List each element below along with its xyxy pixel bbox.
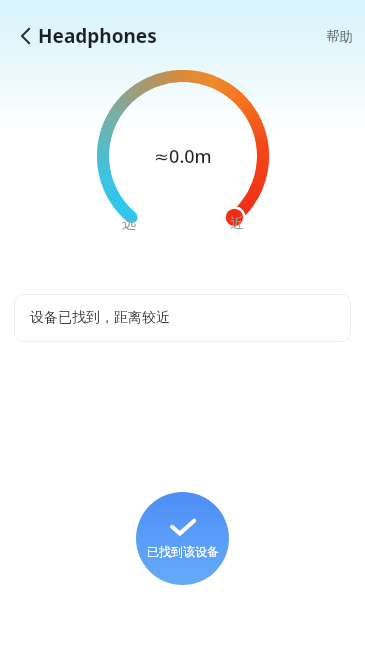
staticText: Headphones	[38, 23, 157, 49]
staticText: 已找到该设备	[147, 544, 219, 559]
button[interactable]: 已找到该设备	[136, 492, 229, 585]
staticText: ≈0.0m	[154, 144, 212, 169]
button[interactable]: 设备已找到，距离较近	[14, 294, 351, 342]
staticText: 远	[122, 215, 183, 233]
staticText: 近	[183, 215, 244, 233]
staticText: 帮助	[326, 28, 353, 45]
staticText: 设备已找到，距离较近	[30, 309, 170, 327]
button[interactable]: Back	[6, 16, 46, 56]
button[interactable]: 帮助	[322, 22, 357, 51]
